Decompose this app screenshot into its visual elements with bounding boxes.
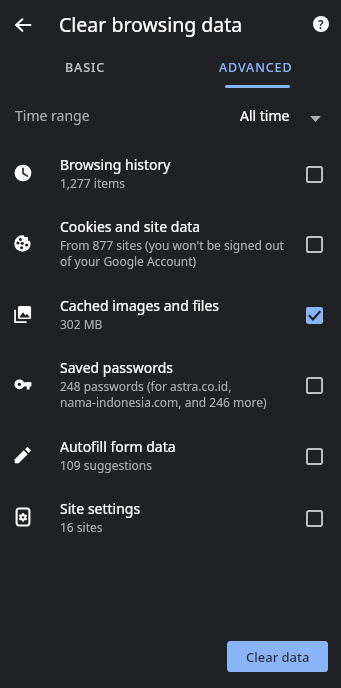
button[interactable]: Back <box>3 5 43 45</box>
button[interactable]: Browsing history <box>0 150 341 212</box>
button[interactable]: Autofill form data <box>0 432 341 494</box>
button[interactable]: Cookies and site data <box>298 228 331 261</box>
button[interactable]: Site settings <box>298 502 331 535</box>
staticText: 302 MB <box>60 316 103 332</box>
button[interactable]: Saved passwords <box>298 369 331 402</box>
staticText: BASIC <box>65 59 106 76</box>
staticText: 16 sites <box>60 519 103 535</box>
button[interactable]: ADVANCED <box>170 50 341 86</box>
staticText: Cookies and site data <box>60 217 201 236</box>
button[interactable]: Help <box>303 6 339 42</box>
staticText: Time range <box>15 106 90 125</box>
button[interactable]: Time range <box>0 86 341 144</box>
staticText: Browsing history <box>60 155 171 174</box>
staticText: 109 suggestions <box>60 457 153 473</box>
button[interactable]: Browsing history <box>298 158 331 191</box>
button[interactable]: Saved passwords <box>0 353 341 432</box>
button[interactable]: Site settings <box>0 494 341 556</box>
button[interactable]: Cached images and files <box>0 291 341 353</box>
staticText: ADVANCED <box>219 59 293 76</box>
button[interactable]: Clear data <box>227 641 328 672</box>
button[interactable]: Cached images and files <box>298 299 331 332</box>
staticText: 1,277 items <box>60 175 125 191</box>
button[interactable]: Autofill form data <box>298 440 331 473</box>
button[interactable]: Cookies and site data <box>0 212 341 291</box>
staticText: Site settings <box>60 499 141 518</box>
staticText: 248 passwords (for astra.co.id, nama-ind… <box>60 378 267 410</box>
staticText: Clear data <box>246 648 310 666</box>
staticText: Saved passwords <box>60 358 173 377</box>
button[interactable]: BASIC <box>0 50 170 86</box>
staticText: From 877 sites (you won't be signed out … <box>60 237 284 269</box>
staticText: Autofill form data <box>60 437 176 456</box>
staticText: Clear browsing data <box>59 11 243 38</box>
staticText: All time <box>240 106 290 125</box>
staticText: Cached images and files <box>60 296 220 315</box>
staticText: ? <box>318 16 324 32</box>
